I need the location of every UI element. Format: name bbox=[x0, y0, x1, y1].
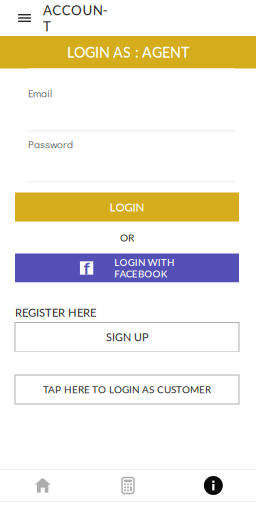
button[interactable]: LOGIN bbox=[15, 192, 239, 221]
button[interactable]: Menu bbox=[6, 0, 43, 36]
staticText: OR bbox=[120, 231, 134, 244]
button[interactable]: Home bbox=[0, 470, 85, 501]
staticText: LOGIN WITH FACEBOOK bbox=[114, 256, 174, 280]
button[interactable]: SIGN UP bbox=[15, 322, 239, 351]
staticText: ACCOUNT bbox=[43, 2, 108, 34]
button[interactable]: Info bbox=[171, 470, 256, 501]
staticText: Password bbox=[28, 137, 73, 151]
button[interactable]: f bbox=[15, 253, 239, 282]
button[interactable]: TAP HERE TO LOGIN AS CUSTOMER bbox=[15, 375, 239, 404]
staticText: SIGN UP bbox=[106, 330, 148, 343]
staticText: f bbox=[84, 258, 90, 278]
staticText: REGISTER HERE bbox=[15, 306, 96, 319]
staticText: LOGIN AS : AGENT bbox=[67, 44, 189, 61]
button[interactable]: Calculator bbox=[85, 470, 171, 501]
staticText: LOGIN bbox=[109, 200, 144, 214]
staticText: TAP HERE TO LOGIN AS CUSTOMER bbox=[43, 384, 211, 395]
staticText: Email bbox=[28, 86, 52, 100]
